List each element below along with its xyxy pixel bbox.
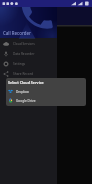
button[interactable]: Cloud Services — [0, 39, 57, 49]
staticText: Google Drive — [16, 99, 36, 103]
button[interactable]: Share Record — [0, 69, 57, 79]
button[interactable]: Google Drive — [6, 96, 86, 105]
staticText: Data Recorder — [13, 52, 35, 56]
staticText: Call Recorder — [3, 30, 31, 36]
button[interactable]: Data Recorder — [0, 49, 57, 59]
button[interactable]: Dropbox — [6, 87, 86, 96]
staticText: Settings — [13, 62, 26, 66]
staticText: Cloud Services — [13, 42, 35, 46]
staticText: Share Record — [13, 72, 33, 76]
staticText: Dropbox — [16, 90, 29, 94]
button[interactable]: Settings — [0, 59, 57, 69]
staticText: Select Cloud Service — [8, 80, 44, 85]
